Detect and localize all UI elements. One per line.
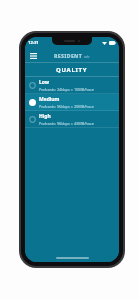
staticText: Podcasts: 24kbps = 10MB/hour — [39, 87, 95, 92]
staticText: 12:31 — [28, 40, 39, 46]
staticText: Low — [39, 79, 50, 86]
staticText: Podcasts: 96kbps = 43MB/hour — [39, 121, 95, 126]
staticText: QUALITY — [56, 66, 88, 74]
staticText: Podcasts: 56kbps = 20MB/hour — [39, 104, 95, 109]
staticText: Medium — [39, 96, 60, 103]
staticText: High — [39, 113, 51, 120]
button[interactable]: Open navigation drawer — [28, 50, 39, 61]
button[interactable]: Low — [25, 77, 119, 94]
staticText: adv — [84, 55, 90, 59]
button[interactable]: High — [25, 111, 119, 128]
staticText: RESIDENT — [54, 52, 83, 59]
button[interactable]: Medium — [25, 94, 119, 111]
